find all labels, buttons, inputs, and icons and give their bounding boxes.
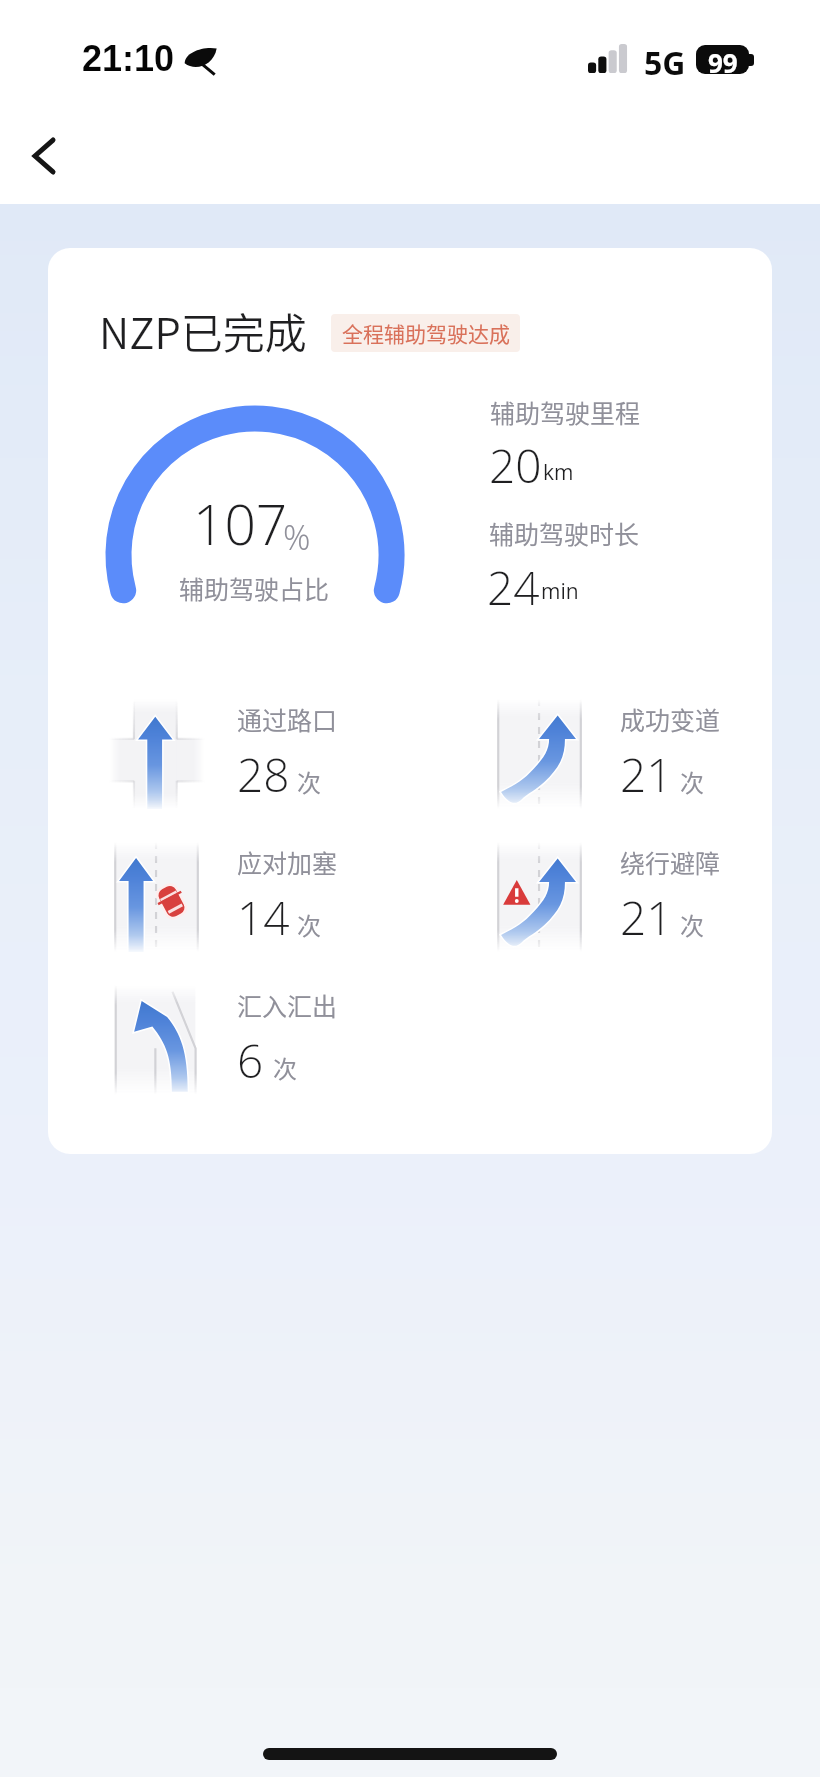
button[interactable]: 应对加塞: [101, 842, 401, 960]
staticText: 99: [708, 45, 738, 74]
staticText: 次: [273, 1050, 297, 1085]
staticText: 6: [237, 1029, 264, 1092]
staticText: 21: [620, 743, 673, 806]
button[interactable]: 绕行避障: [484, 842, 772, 960]
staticText: 成功变道: [620, 701, 721, 737]
staticText: 辅助驾驶里程: [490, 394, 641, 430]
button[interactable]: 全程辅助驾驶达成: [331, 314, 520, 352]
staticText: 应对加塞: [237, 844, 338, 880]
staticText: 通过路口: [237, 701, 338, 737]
button[interactable]: 通过路口: [101, 699, 401, 817]
staticText: 全程辅助驾驶达成: [342, 318, 510, 348]
staticText: min: [541, 577, 579, 606]
staticText: 24: [487, 556, 540, 619]
button[interactable]: 汇入汇出: [101, 985, 401, 1103]
staticText: 107: [193, 486, 288, 561]
staticText: NZP已完成: [99, 300, 307, 361]
staticText: 次: [297, 764, 321, 799]
staticText: 次: [680, 764, 704, 799]
staticText: 次: [297, 907, 321, 942]
staticText: 28: [237, 743, 290, 806]
staticText: 辅助驾驶时长: [489, 515, 640, 551]
staticText: %: [283, 514, 311, 560]
staticText: 5G: [644, 41, 686, 85]
staticText: 汇入汇出: [237, 987, 338, 1023]
staticText: 辅助驾驶占比: [179, 570, 330, 606]
staticText: 21:10: [82, 38, 175, 78]
staticText: km: [543, 458, 574, 487]
button[interactable]: Back: [10, 123, 76, 189]
staticText: 14: [237, 886, 290, 949]
button[interactable]: 成功变道: [484, 699, 772, 817]
staticText: 绕行避障: [620, 844, 721, 880]
staticText: 次: [680, 907, 704, 942]
staticText: 20: [489, 434, 542, 497]
staticText: 21: [620, 886, 673, 949]
